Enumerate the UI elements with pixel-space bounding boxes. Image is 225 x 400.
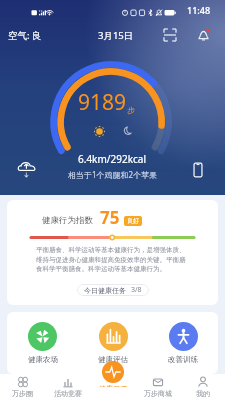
staticText: 改善训练: [168, 355, 198, 364]
staticText: 3/8: [131, 285, 142, 295]
button[interactable]: 万步圈: [0, 376, 45, 398]
staticText: 我的: [196, 389, 210, 398]
button[interactable]: [102, 361, 124, 383]
staticText: 万步商城: [144, 389, 172, 398]
staticText: 空气: 良: [8, 29, 42, 42]
staticText: 75: [100, 206, 120, 229]
button[interactable]: Scan QR code: [159, 24, 181, 46]
button[interactable]: Notifications: [192, 24, 214, 46]
staticText: 健康管理: [99, 384, 127, 387]
staticText: 万步圈: [12, 389, 33, 398]
staticText: 11:48: [187, 4, 211, 16]
staticText: 良好: [127, 217, 139, 225]
button[interactable]: 健康行为指数: [7, 200, 218, 305]
button[interactable]: 健康农场: [7, 322, 78, 364]
staticText: 健康农场: [28, 355, 58, 364]
button[interactable]: 活动竞赛: [45, 376, 90, 398]
staticText: 活动竞赛: [54, 389, 82, 398]
staticText: 健康评估: [98, 355, 128, 364]
button[interactable]: 健康评估: [78, 322, 148, 364]
staticText: 9189: [78, 88, 127, 117]
button[interactable]: Upload: [14, 157, 40, 183]
button[interactable]: 我的: [180, 376, 225, 398]
staticText: 健康行为指数: [42, 215, 93, 226]
staticText: 相当于1个鸡腿和2个苹果: [68, 169, 158, 180]
button[interactable]: 今日健康任务: [77, 284, 149, 296]
staticText: 6.4km/292kcal: [78, 152, 147, 166]
button[interactable]: 万步商城: [135, 376, 180, 398]
staticText: 平衡膳食、科学运动等基本健康行为，是增强体质、维持与促进身心健康和提高免疫效率的…: [36, 246, 189, 273]
button[interactable]: Device: [185, 157, 211, 183]
staticText: 3月15日: [98, 29, 134, 42]
staticText: 步: [127, 105, 135, 115]
button[interactable]: 改善训练: [148, 322, 218, 364]
staticText: 今日健康任务: [84, 286, 126, 295]
